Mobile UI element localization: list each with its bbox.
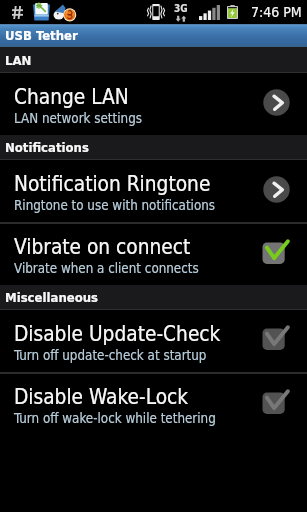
staticText: Notification Ringtone bbox=[14, 172, 211, 196]
staticText: Turn off wake-lock while tethering bbox=[14, 411, 216, 426]
button[interactable]: Open bbox=[262, 175, 290, 207]
staticText: 7:46 PM bbox=[251, 4, 302, 20]
staticText: 3G bbox=[174, 3, 188, 15]
button[interactable]: Disable Update-Check bbox=[0, 310, 307, 372]
staticText: LAN bbox=[5, 53, 32, 68]
button[interactable]: Disable Wake-Lock bbox=[0, 374, 307, 435]
staticText: Notifications bbox=[5, 140, 89, 155]
button[interactable]: Change LAN bbox=[0, 73, 307, 135]
button[interactable]: Checked bbox=[262, 239, 290, 271]
staticText: Change LAN bbox=[14, 85, 129, 109]
button[interactable]: Unchecked bbox=[262, 389, 290, 421]
staticText: Disable Update-Check bbox=[14, 322, 221, 346]
staticText: Vibrate on connect bbox=[14, 235, 191, 259]
staticText: Ringtone to use with notifications bbox=[14, 198, 216, 213]
button[interactable]: Notification Ringtone bbox=[0, 160, 307, 222]
button[interactable]: Unchecked bbox=[262, 325, 290, 357]
button[interactable]: Open bbox=[262, 88, 290, 120]
staticText: USB Tether bbox=[5, 28, 78, 43]
staticText: Turn off update-check at startup bbox=[14, 348, 207, 363]
button[interactable]: Vibrate on connect bbox=[0, 224, 307, 285]
staticText: Vibrate when a client connects bbox=[14, 261, 199, 276]
staticText: LAN network settings bbox=[14, 111, 142, 126]
staticText: Miscellaneous bbox=[5, 290, 98, 305]
staticText: Disable Wake-Lock bbox=[14, 385, 189, 409]
